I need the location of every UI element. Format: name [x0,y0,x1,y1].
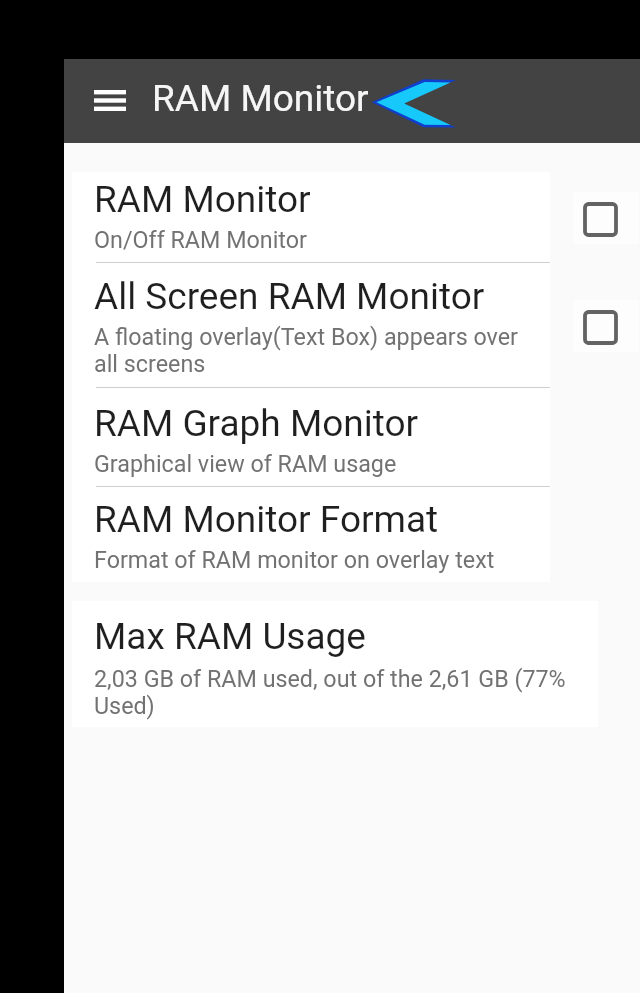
button[interactable]: Open navigation menu [81,71,139,129]
staticText: RAM Monitor [94,178,544,221]
staticText: Format of RAM monitor on overlay text [94,546,544,573]
staticText: RAM Graph Monitor [94,402,544,445]
button[interactable]: Toggle [573,300,639,352]
staticText: A floating overlay(Text Box) appears ove… [94,323,534,377]
button[interactable] [72,263,550,387]
button[interactable] [72,601,598,727]
staticText: Max RAM Usage [94,615,366,658]
staticText: 2,03 GB of RAM used, out of the 2,61 GB … [94,665,584,719]
button[interactable] [72,172,550,262]
button[interactable] [72,487,550,582]
button[interactable]: Toggle [573,192,639,244]
staticText: RAM Monitor [152,77,369,120]
staticText: All Screen RAM Monitor [94,275,534,318]
staticText: Graphical view of RAM usage [94,450,544,477]
staticText: RAM Monitor Format [94,498,544,541]
staticText: On/Off RAM Monitor [94,226,544,253]
button[interactable] [72,388,550,486]
